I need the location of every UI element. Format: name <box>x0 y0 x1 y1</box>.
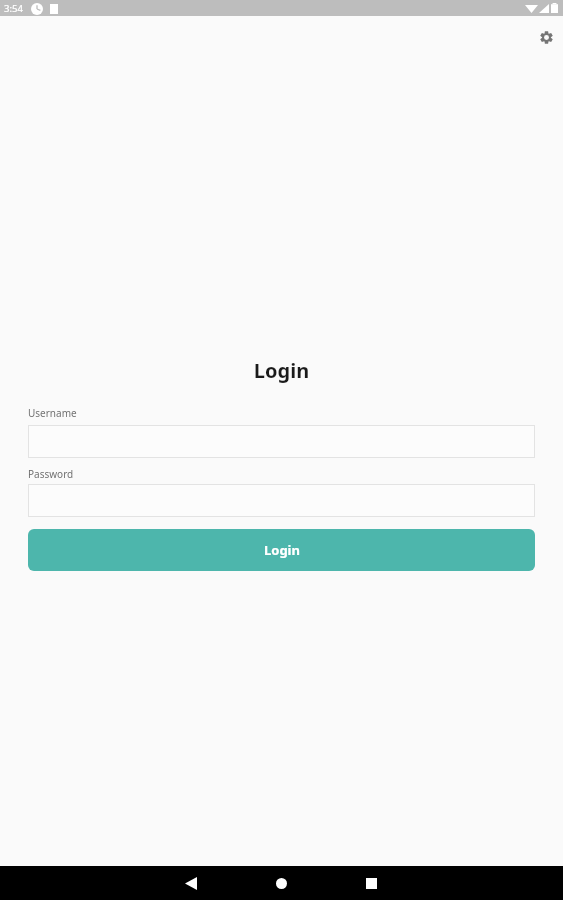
staticText: Username <box>28 406 77 420</box>
button[interactable]: Password input <box>28 484 535 517</box>
staticText: Password <box>28 467 74 481</box>
staticText: Login <box>264 541 300 559</box>
button[interactable]: Login <box>28 529 535 571</box>
button[interactable]: Username input <box>28 425 535 458</box>
button[interactable]: Settings <box>526 17 563 57</box>
staticText: 3:54 <box>4 2 23 15</box>
button[interactable]: Home <box>263 866 299 900</box>
button[interactable]: Recent apps <box>353 866 389 900</box>
button[interactable]: Back <box>173 866 209 900</box>
staticText: Login <box>0 357 563 384</box>
